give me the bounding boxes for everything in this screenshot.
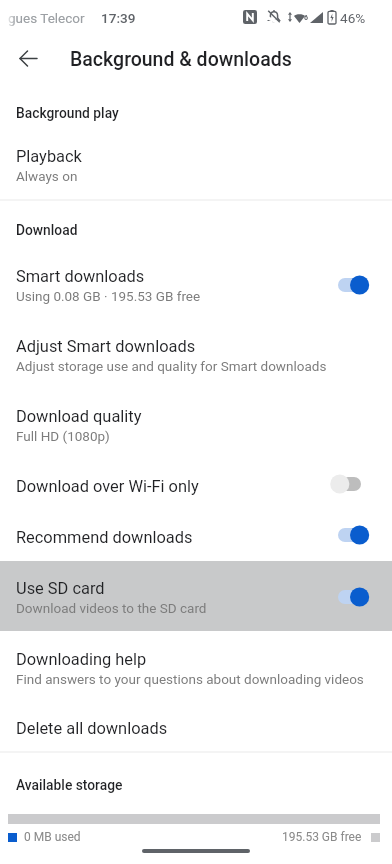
staticText: 195.53 GB free — [282, 830, 362, 844]
button[interactable]: Adjust Smart downloads — [0, 319, 392, 389]
staticText: 17:39 — [101, 10, 136, 26]
staticText: gues Telecor — [8, 10, 85, 26]
button[interactable]: Downloading help — [0, 632, 392, 702]
staticText: Download quality — [16, 407, 142, 426]
staticText: Download over Wi-Fi only — [16, 477, 199, 496]
staticText: Use SD card — [16, 579, 105, 598]
staticText: Recommend downloads — [16, 528, 193, 547]
staticText: Background play — [16, 105, 119, 121]
staticText: Smart downloads — [16, 267, 145, 286]
staticText: Find answers to your questions about dow… — [16, 671, 364, 687]
staticText: Delete all downloads — [16, 719, 168, 738]
button[interactable]: Download over Wi-Fi only — [0, 459, 392, 510]
staticText: Available storage — [16, 777, 123, 793]
staticText: Adjust Smart downloads — [16, 337, 196, 356]
staticText: 46% — [340, 10, 366, 26]
button[interactable]: Recommend downloads — [0, 510, 392, 561]
staticText: Download — [16, 222, 78, 238]
button[interactable]: Playback — [0, 129, 392, 199]
staticText: Full HD (1080p) — [16, 428, 110, 444]
staticText: Always on — [16, 168, 78, 184]
button[interactable]: Delete all downloads — [0, 701, 392, 752]
button[interactable]: Download quality — [0, 389, 392, 459]
staticText: Download videos to the SD card — [16, 600, 207, 616]
button[interactable]: Back — [4, 34, 52, 82]
staticText: Playback — [16, 147, 82, 166]
staticText: Downloading help — [16, 650, 147, 669]
staticText: Background & downloads — [70, 48, 292, 71]
staticText: 6 — [304, 14, 309, 22]
staticText: Using 0.08 GB · 195.53 GB free — [16, 288, 201, 304]
button[interactable]: Smart downloads — [0, 249, 392, 319]
button[interactable]: Use SD card — [0, 561, 392, 631]
staticText: 0 MB used — [24, 830, 81, 844]
staticText: Adjust storage use and quality for Smart… — [16, 358, 327, 374]
